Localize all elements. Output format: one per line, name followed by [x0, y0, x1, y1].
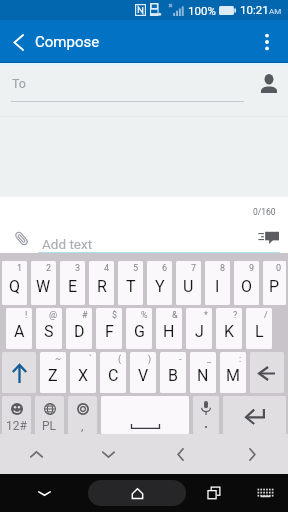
staticText: 4	[104, 263, 110, 274]
staticText: !	[25, 310, 28, 321]
staticText: L	[255, 322, 264, 341]
staticText: )	[148, 354, 152, 365]
button[interactable]: B	[160, 352, 186, 393]
staticText: T	[126, 277, 136, 296]
button[interactable]: F	[96, 308, 122, 349]
staticText: V	[138, 366, 149, 385]
button[interactable]: D	[66, 308, 92, 349]
staticText: A	[14, 322, 25, 341]
staticText: (	[118, 354, 122, 365]
staticText: W	[36, 277, 51, 296]
button[interactable]: Move right	[216, 434, 288, 474]
staticText: U	[183, 277, 194, 296]
staticText: Add text	[42, 236, 93, 252]
staticText: /	[264, 310, 268, 321]
staticText: D	[74, 322, 85, 341]
staticText: AM	[269, 7, 282, 16]
button[interactable]: N	[190, 352, 216, 393]
button[interactable]: E	[60, 261, 85, 305]
staticText: 7	[191, 263, 197, 274]
staticText: 3	[75, 263, 81, 274]
button[interactable]: O	[234, 261, 259, 305]
button[interactable]: U	[176, 261, 201, 305]
button[interactable]: A	[6, 308, 32, 349]
staticText: K	[224, 322, 235, 341]
staticText: 6	[162, 263, 168, 274]
staticText: :	[239, 354, 242, 365]
button[interactable]: Send message	[250, 229, 288, 259]
button[interactable]: Move up	[0, 434, 72, 474]
button[interactable]: Backspace	[250, 352, 284, 393]
button[interactable]: X	[70, 352, 96, 393]
staticText: S	[44, 322, 54, 341]
button[interactable]: V	[130, 352, 156, 393]
button[interactable]: I	[205, 261, 230, 305]
button[interactable]: G	[126, 308, 152, 349]
staticText: Compose	[35, 33, 100, 51]
staticText: Q	[9, 277, 21, 296]
button[interactable]: Y	[147, 261, 172, 305]
button[interactable]: J	[186, 308, 212, 349]
staticText: 9	[249, 263, 255, 274]
staticText: -	[179, 354, 182, 365]
staticText: X	[78, 366, 89, 385]
button[interactable]: Attach	[0, 229, 42, 259]
staticText: @	[49, 310, 58, 321]
button[interactable]: T	[118, 261, 143, 305]
button[interactable]: S	[36, 308, 62, 349]
button[interactable]: Back	[0, 20, 35, 62]
button[interactable]: L	[246, 308, 272, 349]
button[interactable]: C	[100, 352, 126, 393]
staticText: &	[172, 310, 178, 321]
staticText: R	[97, 277, 107, 296]
staticText: #	[82, 310, 88, 321]
button[interactable]: Q	[2, 261, 27, 305]
button[interactable]: Symbols	[2, 396, 31, 434]
staticText: _	[207, 354, 212, 365]
button[interactable]: Enter	[223, 396, 286, 434]
button[interactable]: Z	[40, 352, 66, 393]
button[interactable]: Move down	[72, 434, 144, 474]
staticText: ~	[55, 354, 62, 365]
staticText: N	[197, 366, 209, 385]
staticText: 100%	[188, 4, 216, 17]
staticText: 0	[276, 263, 282, 274]
button[interactable]: R	[89, 261, 114, 305]
button[interactable]: Shift	[2, 352, 36, 393]
button[interactable]: More options	[248, 20, 288, 62]
staticText: $	[112, 310, 118, 321]
staticText: %	[141, 310, 148, 321]
button[interactable]: W	[31, 261, 56, 305]
staticText: PL	[42, 419, 57, 433]
button[interactable]: Settings	[68, 396, 97, 434]
button[interactable]: K	[216, 308, 242, 349]
staticText: Y	[155, 277, 165, 296]
button[interactable]: Home	[88, 480, 186, 506]
button[interactable]: Move left	[144, 434, 216, 474]
button[interactable]: Choose contact	[249, 65, 288, 101]
staticText: P	[269, 277, 280, 296]
button[interactable]: Switch keyboard	[242, 474, 288, 512]
staticText: F	[105, 322, 114, 341]
staticText: *	[204, 310, 208, 321]
button[interactable]: Space	[101, 396, 189, 434]
staticText: 1	[17, 263, 23, 274]
staticText: ?	[233, 310, 238, 321]
staticText: 2	[46, 263, 52, 274]
button[interactable]: Voice input	[193, 396, 219, 434]
staticText: 8	[220, 263, 226, 274]
button[interactable]: Language	[35, 396, 64, 434]
button[interactable]: Hide keyboard	[0, 474, 88, 512]
staticText: Z	[48, 366, 58, 385]
staticText: 0/160	[253, 207, 276, 217]
button[interactable]: Recent apps	[186, 474, 242, 512]
staticText: G	[134, 322, 145, 341]
button[interactable]: P	[263, 261, 286, 305]
button[interactable]: H	[156, 308, 182, 349]
staticText: H	[163, 322, 175, 341]
button[interactable]: M	[220, 352, 246, 393]
staticText: 10:21	[240, 3, 269, 16]
staticText: M	[226, 366, 240, 385]
staticText: To	[12, 76, 26, 91]
button[interactable]: To	[12, 65, 249, 101]
